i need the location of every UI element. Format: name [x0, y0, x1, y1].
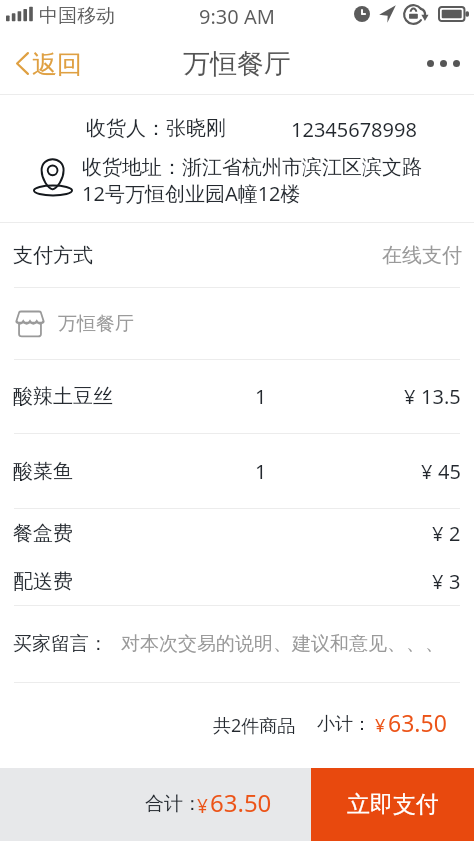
- staticText: 63.50: [388, 707, 447, 738]
- staticText: 酸菜鱼: [13, 459, 73, 484]
- staticText: 万恒餐厅: [183, 47, 291, 81]
- staticText: 酸辣土豆丝: [13, 384, 113, 409]
- staticText: 立即支付: [347, 790, 439, 819]
- other: Battery: [438, 6, 469, 22]
- button[interactable]: 餐盒费: [0, 509, 474, 557]
- staticText: ¥: [375, 713, 386, 738]
- staticText: 餐盒费: [13, 521, 73, 546]
- staticText: 收货地址：浙江省杭州市滨江区滨文路 12号万恒创业园A幢12楼: [82, 155, 422, 207]
- staticText: 对本次交易的说明、建议和意见、、、: [121, 632, 444, 656]
- button[interactable]: 酸菜鱼: [0, 434, 474, 508]
- button[interactable]: 配送费: [0, 557, 474, 605]
- button[interactable]: 酸辣土豆丝: [0, 360, 474, 433]
- staticText: 买家留言：: [13, 632, 108, 656]
- other: Rotation lock: [403, 4, 429, 25]
- button[interactable]: 买家留言：: [0, 606, 474, 682]
- staticText: ¥: [421, 458, 433, 485]
- other: Alarm: [354, 6, 370, 22]
- button[interactable]: 支付方式: [0, 223, 474, 287]
- staticText: 万恒餐厅: [58, 312, 134, 336]
- other: Location: [379, 5, 396, 23]
- staticText: 9:30 AM: [199, 3, 275, 30]
- button[interactable]: 立即支付: [311, 768, 474, 841]
- staticText: 支付方式: [13, 243, 93, 268]
- staticText: 配送费: [13, 569, 73, 594]
- staticText: 在线支付: [382, 243, 462, 268]
- button[interactable]: 万恒餐厅: [0, 288, 474, 359]
- button[interactable]: 返回: [0, 37, 98, 92]
- staticText: 12345678998: [291, 116, 417, 143]
- staticText: 1: [255, 458, 267, 485]
- staticText: 收货人：张晓刚: [86, 116, 226, 141]
- staticText: 13.5: [421, 383, 461, 410]
- staticText: 小计：: [317, 713, 371, 736]
- staticText: 返回: [32, 49, 82, 80]
- staticText: 3: [449, 568, 461, 595]
- staticText: ¥: [432, 568, 444, 595]
- staticText: 63.50: [210, 786, 272, 819]
- staticText: 45: [438, 458, 461, 485]
- staticText: 共2件商品: [213, 713, 296, 738]
- staticText: ¥: [197, 793, 208, 819]
- button[interactable]: More options: [411, 42, 474, 85]
- staticText: 1: [255, 383, 267, 410]
- staticText: 中国移动: [39, 4, 115, 28]
- staticText: ¥: [404, 383, 416, 410]
- staticText: ¥: [432, 520, 444, 547]
- staticText: 2: [449, 520, 461, 547]
- staticText: 合计：: [145, 792, 202, 816]
